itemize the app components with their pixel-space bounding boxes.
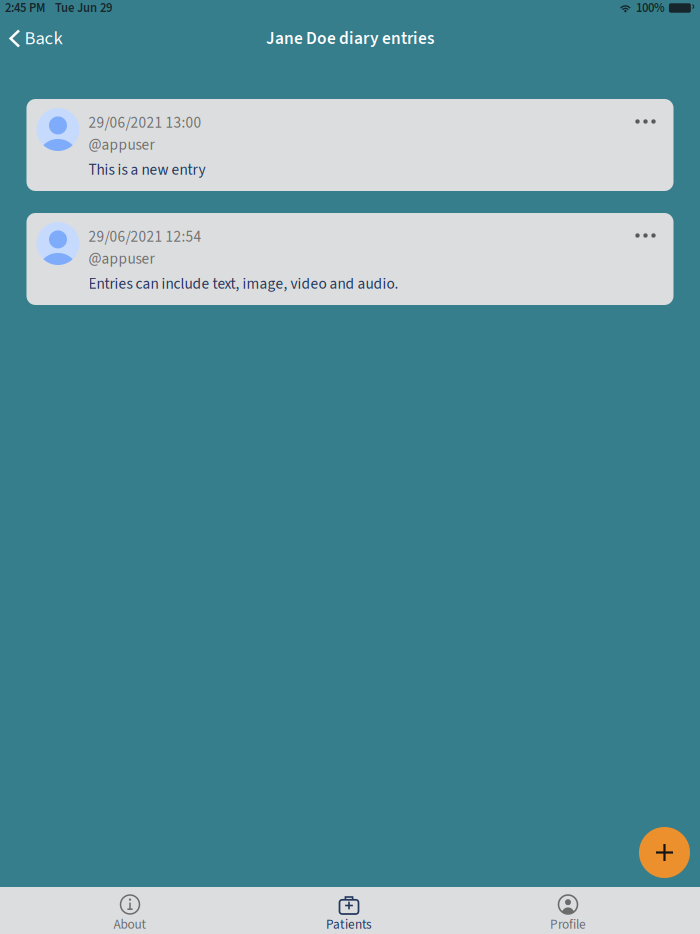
button[interactable]: Patients <box>306 887 392 934</box>
staticText: 2:45 PM <box>5 0 45 17</box>
staticText: Tue Jun 29 <box>55 0 112 17</box>
staticText: @appuser <box>88 248 154 270</box>
staticText: Patients <box>326 915 372 934</box>
staticText: 100% <box>636 0 665 17</box>
staticText: Profile <box>550 915 586 934</box>
staticText: 29/06/2021 12:54 <box>88 226 201 248</box>
staticText: About <box>113 915 146 934</box>
button[interactable]: About <box>87 887 173 934</box>
staticText: @appuser <box>88 134 154 156</box>
button[interactable]: Profile <box>525 887 611 934</box>
staticText: 29/06/2021 13:00 <box>88 112 201 134</box>
staticText: Jane Doe diary entries <box>266 26 434 51</box>
staticText: Entries can include text, image, video a… <box>88 273 398 295</box>
button[interactable]: New entry <box>639 827 690 878</box>
button[interactable]: Back <box>0 19 72 58</box>
staticText: Back <box>24 25 62 52</box>
staticText: This is a new entry <box>88 159 205 181</box>
button[interactable]: More options <box>627 108 663 136</box>
button[interactable]: More options <box>627 222 663 250</box>
